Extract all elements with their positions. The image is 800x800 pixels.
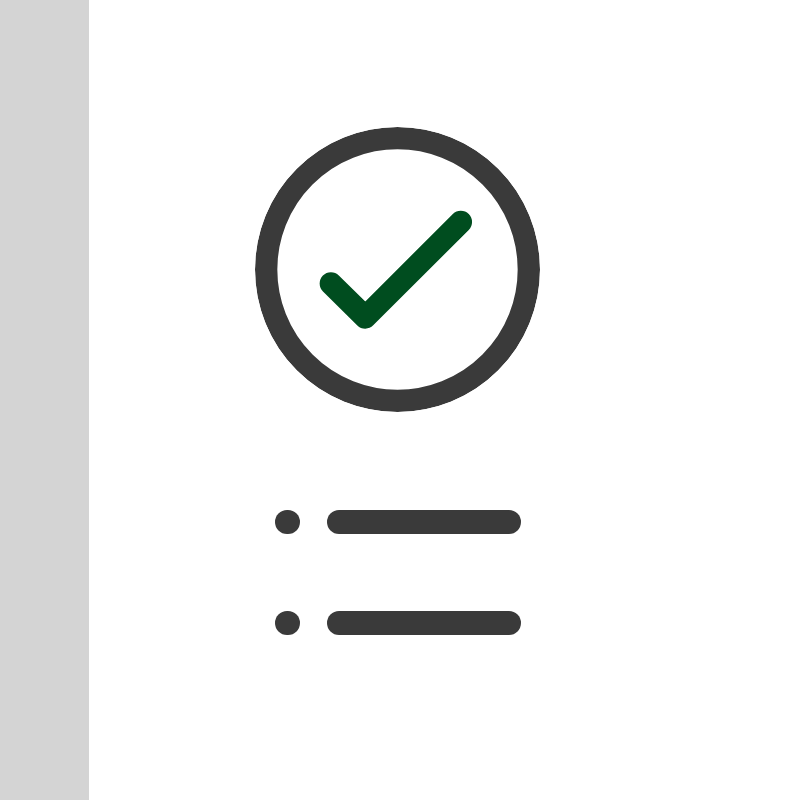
button[interactable]: List item one: [275, 510, 521, 534]
button[interactable]: Completed: [255, 127, 540, 412]
button[interactable]: List item two: [275, 611, 521, 635]
